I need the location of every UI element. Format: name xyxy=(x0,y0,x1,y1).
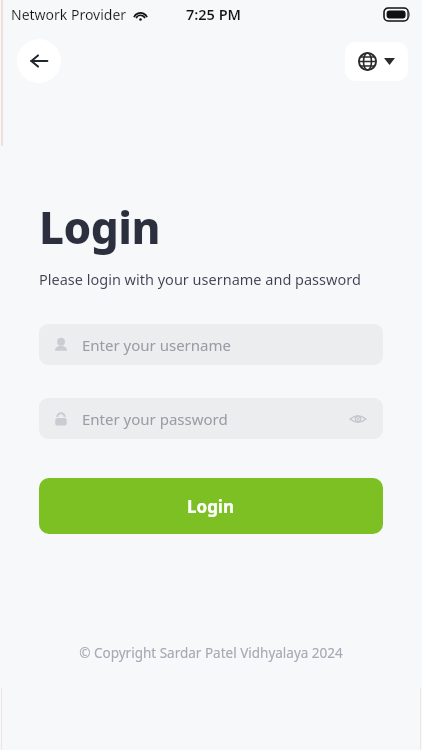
staticText: Login xyxy=(187,495,235,518)
button[interactable]: Enter your username xyxy=(39,324,383,365)
button[interactable]: Back xyxy=(17,39,61,83)
button[interactable]: Select language xyxy=(345,42,408,81)
staticText: © Copyright Sardar Patel Vidhyalaya 2024 xyxy=(0,644,422,662)
staticText: Enter your password xyxy=(82,409,347,429)
staticText: Please login with your username and pass… xyxy=(39,269,361,289)
button[interactable]: Show password xyxy=(347,408,369,430)
staticText: Enter your username xyxy=(82,335,369,355)
staticText: Network Provider xyxy=(11,5,127,24)
button[interactable]: Login xyxy=(39,478,383,534)
staticText: 7:25 PM xyxy=(186,4,242,24)
staticText: Login xyxy=(39,197,161,257)
button[interactable]: Enter your password xyxy=(39,398,383,439)
